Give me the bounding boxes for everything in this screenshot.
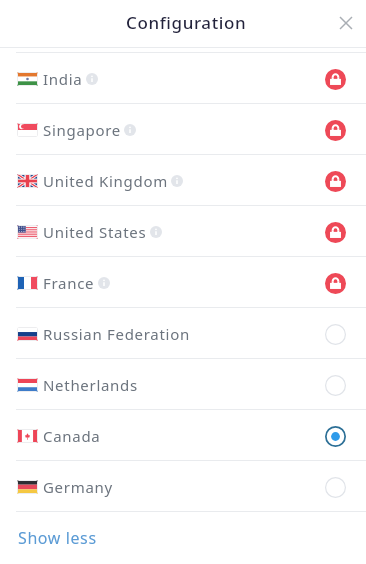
button[interactable]: United Kingdom bbox=[0, 155, 366, 205]
button[interactable]: Select bbox=[304, 361, 366, 409]
button[interactable]: Locked bbox=[304, 157, 366, 205]
button[interactable]: Germany bbox=[0, 461, 366, 511]
button[interactable]: Select bbox=[304, 463, 366, 511]
button[interactable]: United States bbox=[0, 206, 366, 256]
button[interactable]: Selected bbox=[304, 412, 366, 460]
button[interactable]: Netherlands bbox=[0, 359, 366, 409]
button[interactable]: France bbox=[0, 257, 366, 307]
button[interactable]: Close bbox=[331, 8, 361, 38]
staticText: Netherlands bbox=[43, 375, 138, 395]
button[interactable]: Canada bbox=[0, 410, 366, 460]
staticText: United States bbox=[43, 222, 147, 242]
button[interactable]: Locked bbox=[304, 106, 366, 154]
staticText: Germany bbox=[43, 477, 113, 497]
staticText: India bbox=[43, 69, 83, 89]
button[interactable]: Russian Federation bbox=[0, 308, 366, 358]
button[interactable]: Show less bbox=[0, 512, 366, 564]
staticText: Singapore bbox=[43, 120, 121, 140]
button[interactable]: Singapore bbox=[0, 104, 366, 154]
staticText: France bbox=[43, 273, 95, 293]
staticText: Show less bbox=[18, 527, 97, 549]
staticText: Canada bbox=[43, 426, 101, 446]
button[interactable]: Locked bbox=[304, 208, 366, 256]
staticText: Russian Federation bbox=[43, 324, 190, 344]
button[interactable]: Locked bbox=[304, 259, 366, 307]
staticText: United Kingdom bbox=[43, 171, 168, 191]
button[interactable]: India bbox=[0, 53, 366, 103]
button[interactable]: Select bbox=[304, 310, 366, 358]
staticText: Configuration bbox=[126, 11, 247, 34]
button[interactable]: Locked bbox=[304, 55, 366, 103]
